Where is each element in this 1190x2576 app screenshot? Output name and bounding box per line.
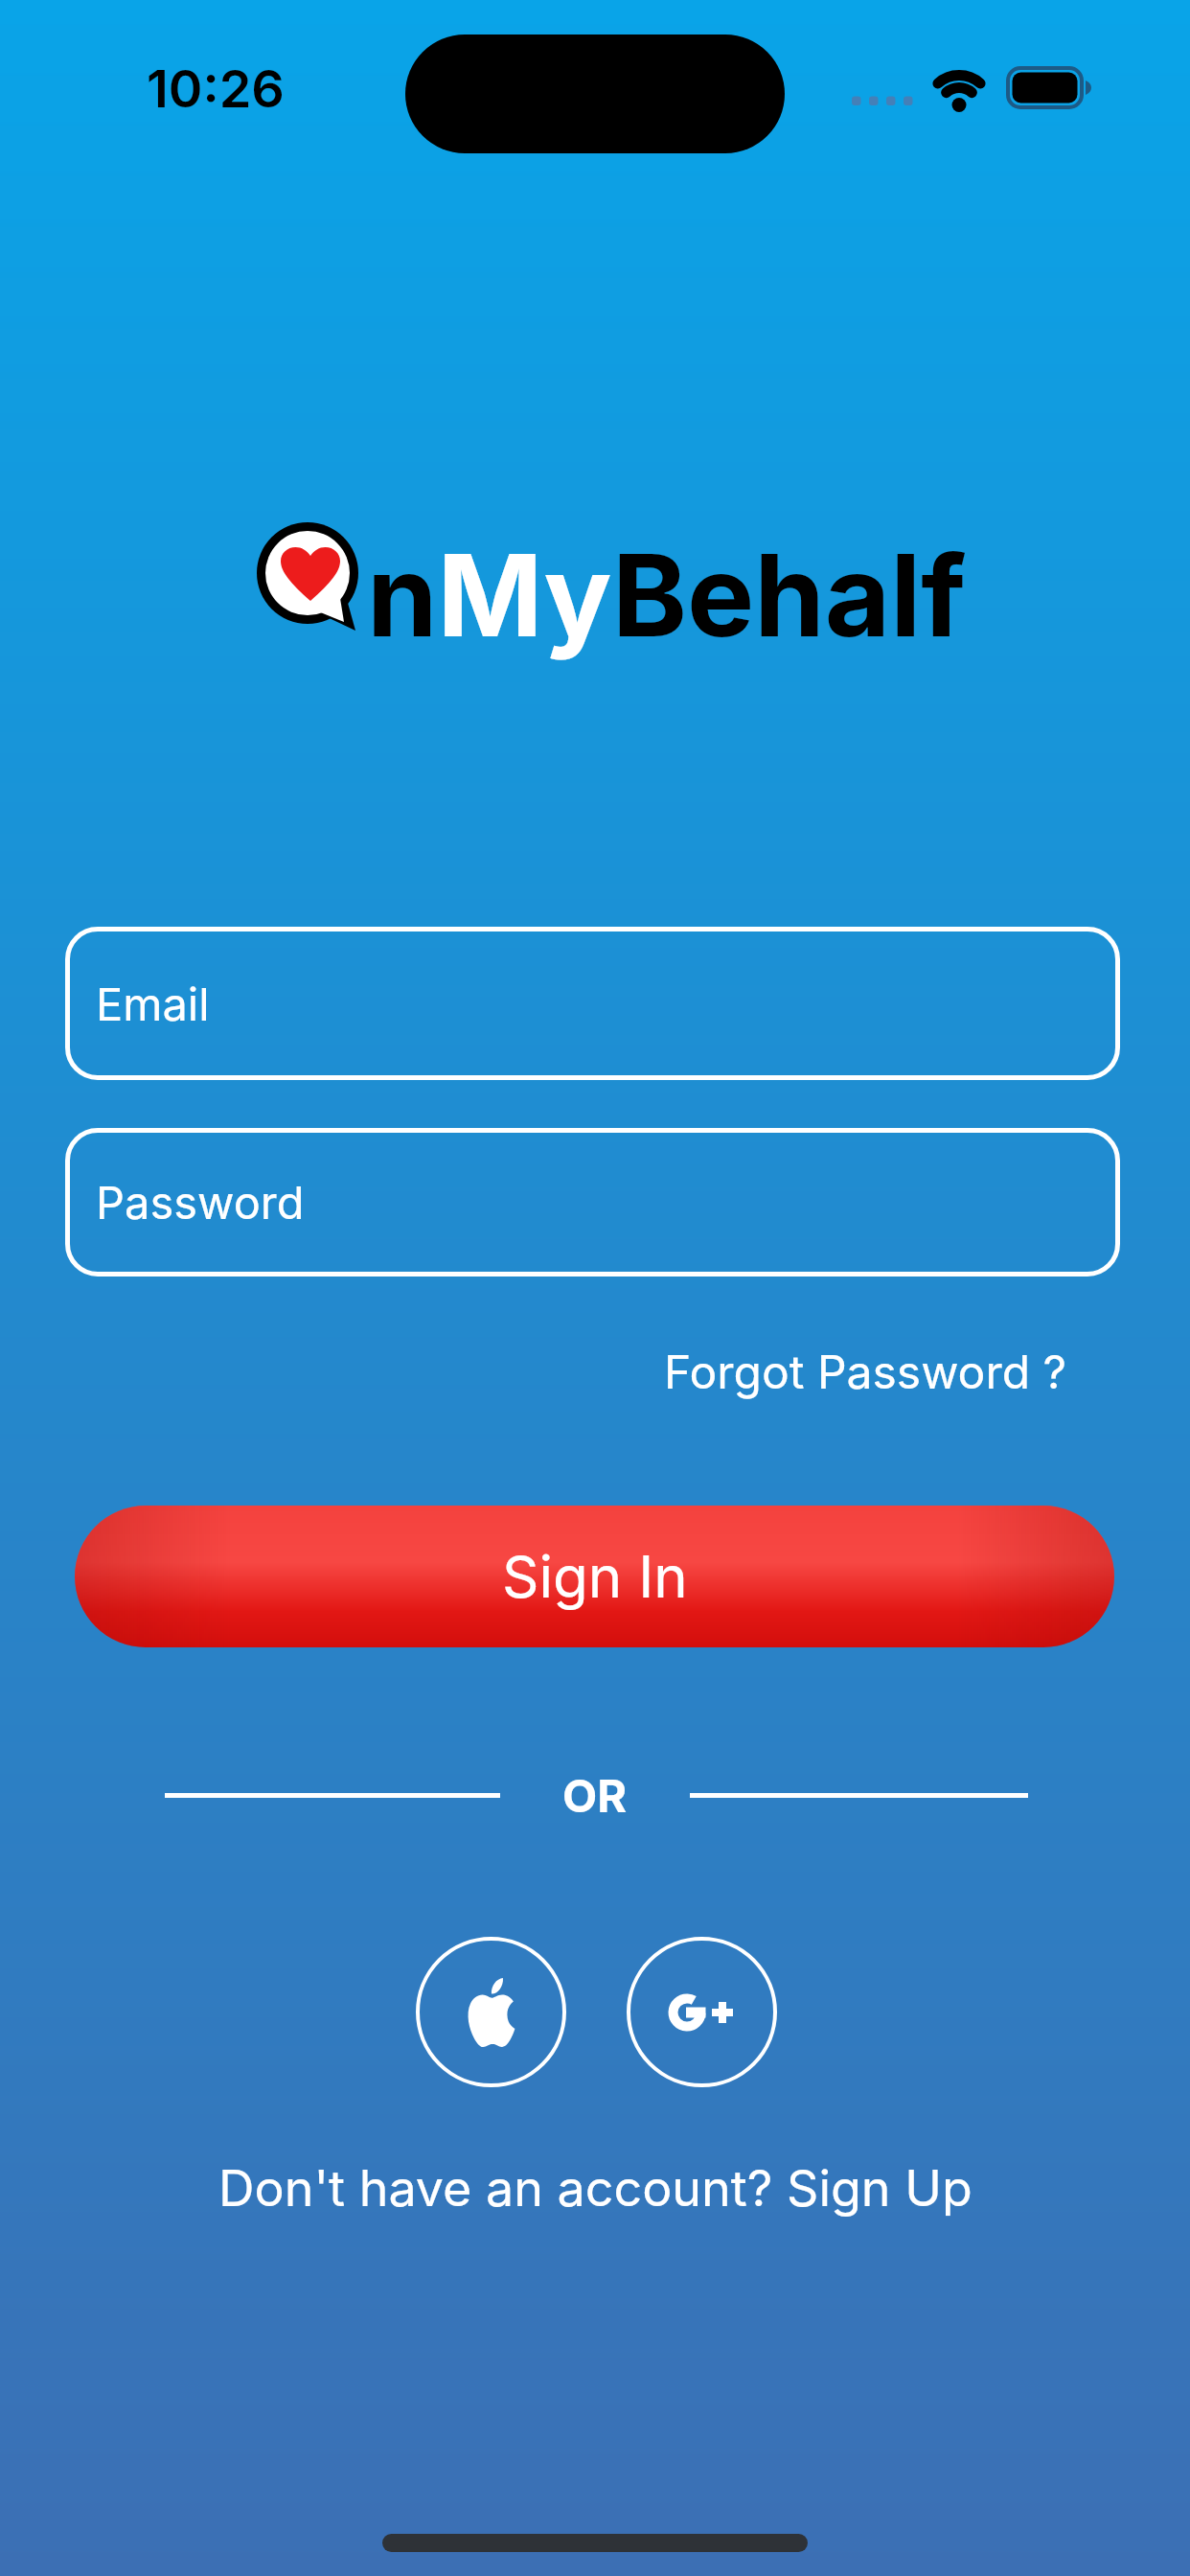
button[interactable]: Email [65, 927, 1120, 1080]
staticText: 10:26 [147, 57, 285, 120]
staticText: Email [96, 977, 210, 1031]
staticText: Don't have an account? Sign Up [218, 2158, 973, 2219]
button[interactable] [416, 1937, 566, 2087]
staticText: Forgot Password ? [664, 1344, 1067, 1399]
button[interactable]: Sign In [75, 1506, 1114, 1647]
staticText: OR [562, 1768, 628, 1823]
staticText: Sign In [502, 1542, 688, 1612]
button[interactable]: Password [65, 1128, 1120, 1276]
staticText: Password [96, 1175, 305, 1230]
button[interactable]: Don't have an account? Sign Up [0, 2156, 1190, 2219]
button[interactable]: Forgot Password ? [575, 1340, 1067, 1403]
button[interactable] [627, 1937, 777, 2087]
staticText: nMyBehalf [367, 527, 967, 664]
